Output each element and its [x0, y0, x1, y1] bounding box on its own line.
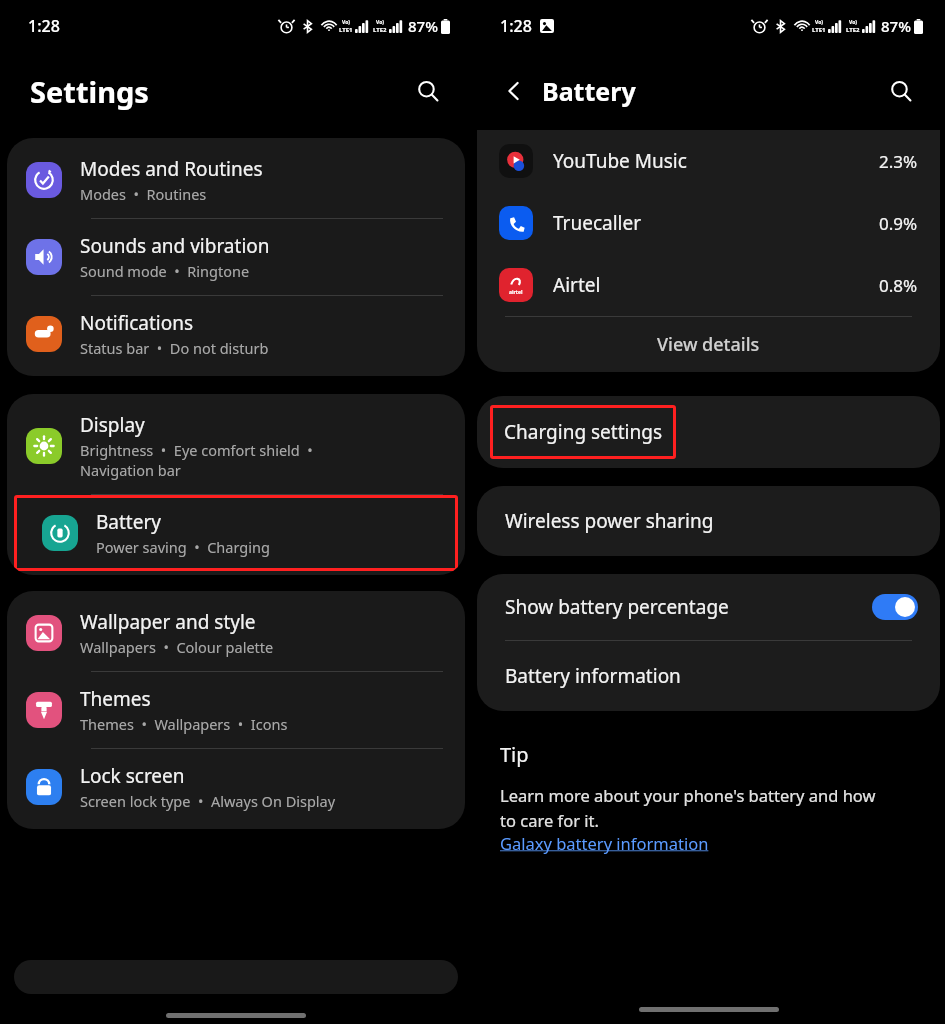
staticText: Sound mode • Ringtone: [80, 261, 250, 281]
staticText: Settings: [30, 72, 149, 111]
button[interactable]: Notifications: [7, 296, 465, 372]
button[interactable]: Battery: [14, 495, 458, 571]
staticText: Status bar • Do not disturb: [80, 338, 269, 358]
button[interactable]: View details: [477, 317, 940, 372]
staticText: YouTube Music: [553, 148, 879, 174]
staticText: LTE2: [373, 26, 387, 34]
button[interactable]: Display: [7, 398, 465, 494]
staticText: View details: [657, 332, 760, 357]
button[interactable]: Wallpaper and style: [7, 595, 465, 671]
staticText: Sounds and vibration: [80, 233, 270, 259]
staticText: Show battery percentage: [505, 594, 872, 620]
staticText: 87%: [881, 16, 911, 36]
staticText: Vo): [376, 19, 384, 26]
staticText: Brightness • Eye comfort shield • Naviga…: [80, 440, 313, 480]
button[interactable]: Show battery percentage: [477, 574, 940, 640]
button[interactable]: Back: [494, 71, 534, 111]
staticText: Galaxy battery information: [500, 832, 709, 854]
button[interactable]: airtel: [477, 254, 940, 316]
staticText: Modes and Routines: [80, 156, 263, 182]
staticText: Wallpaper and style: [80, 609, 256, 635]
staticText: 87%: [408, 16, 438, 36]
staticText: 1:28: [500, 15, 532, 37]
button[interactable]: Lock screen: [7, 749, 465, 825]
button[interactable]: Wireless power sharing: [477, 486, 940, 556]
button[interactable]: Search: [877, 67, 925, 115]
staticText: 2.3%: [879, 150, 918, 173]
staticText: Tip: [500, 741, 529, 768]
button[interactable]: Truecaller: [477, 192, 940, 254]
button[interactable]: Battery: [14, 495, 458, 571]
staticText: Battery: [542, 74, 636, 108]
staticText: Modes • Routines: [80, 184, 207, 204]
button[interactable]: Themes: [7, 672, 465, 748]
button[interactable]: YouTube Music: [477, 130, 940, 192]
staticText: LTE1: [812, 26, 826, 34]
staticText: LTE2: [846, 26, 860, 34]
staticText: Power saving • Charging: [96, 537, 270, 557]
staticText: Vo): [815, 19, 823, 26]
staticText: Learn more about your phone's battery an…: [500, 784, 876, 832]
button[interactable]: Sounds and vibration: [7, 219, 465, 295]
button[interactable]: Charging settings: [490, 405, 676, 459]
staticText: Themes: [80, 686, 151, 712]
button[interactable]: Battery information: [477, 641, 940, 711]
staticText: airtel: [509, 289, 523, 296]
staticText: Vo): [849, 19, 857, 26]
staticText: Lock screen: [80, 763, 185, 789]
staticText: Themes • Wallpapers • Icons: [80, 714, 288, 734]
staticText: LTE1: [339, 26, 353, 34]
staticText: Vo): [342, 19, 350, 26]
button[interactable]: Galaxy battery information: [500, 832, 709, 854]
staticText: Wallpapers • Colour palette: [80, 637, 274, 657]
staticText: 1:28: [28, 15, 60, 37]
staticText: Truecaller: [553, 210, 879, 236]
staticText: Battery information: [505, 663, 681, 689]
staticText: Wireless power sharing: [505, 508, 714, 534]
staticText: Battery: [96, 509, 161, 535]
staticText: Screen lock type • Always On Display: [80, 791, 336, 811]
button[interactable]: [14, 960, 458, 994]
staticText: Airtel: [553, 272, 879, 298]
staticText: 0.9%: [879, 212, 918, 235]
button[interactable]: Search: [404, 67, 452, 115]
button[interactable]: Modes and Routines: [7, 142, 465, 218]
staticText: Charging settings: [504, 419, 662, 445]
staticText: 0.8%: [879, 274, 918, 297]
staticText: Notifications: [80, 310, 194, 336]
staticText: Display: [80, 412, 145, 438]
